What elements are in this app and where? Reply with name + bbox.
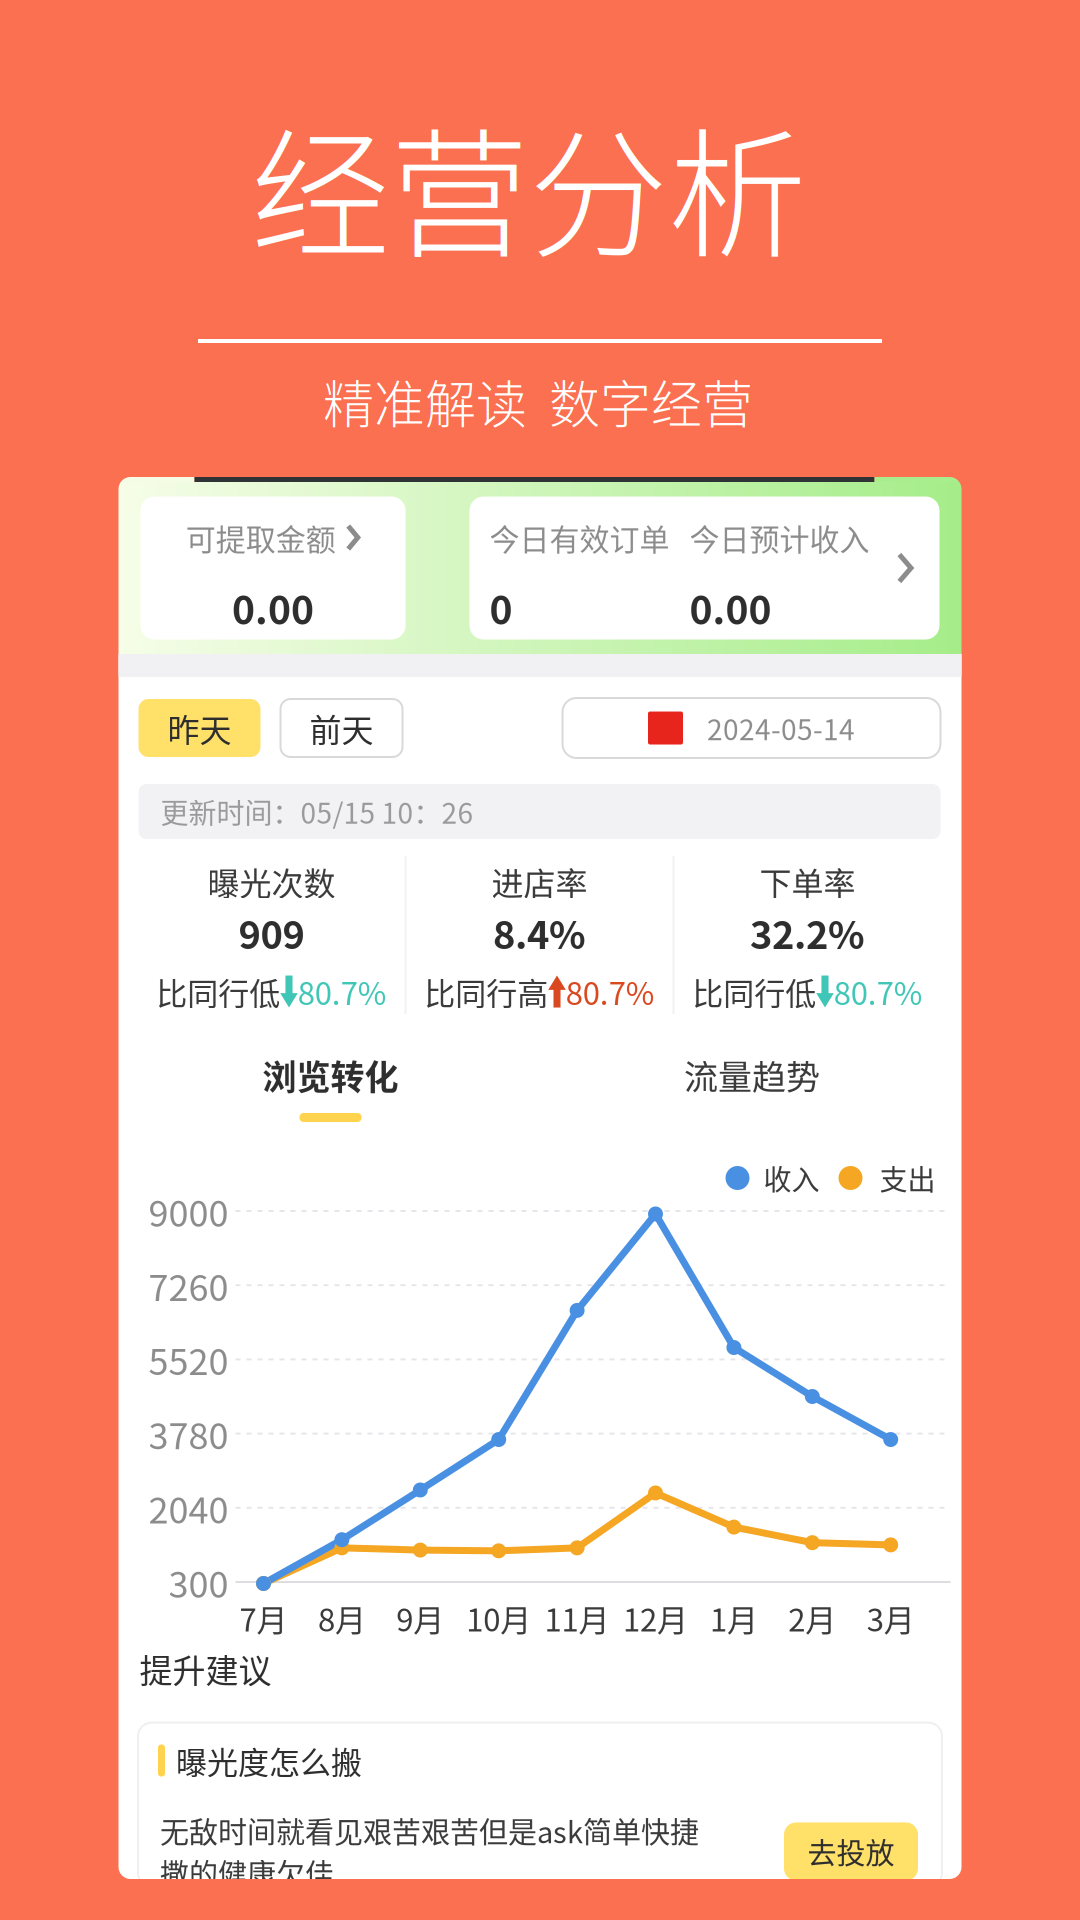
staticText: 8.4% bbox=[493, 905, 586, 960]
button[interactable]: 可提取金额 bbox=[140, 496, 405, 639]
staticText: 1月 bbox=[710, 1596, 758, 1640]
staticText: 80.7% bbox=[834, 969, 923, 1014]
staticText: 进店率 bbox=[491, 858, 587, 905]
staticText: 今日有效订单 bbox=[489, 516, 669, 559]
staticText: 流量趋势 bbox=[684, 1050, 820, 1100]
staticText: 3月 bbox=[867, 1596, 915, 1640]
staticText: 12月 bbox=[623, 1596, 688, 1640]
staticText: 8月 bbox=[318, 1596, 366, 1640]
staticText: 9000 bbox=[148, 1185, 228, 1237]
staticText: 80.7% bbox=[298, 969, 387, 1014]
staticText: 比同行低 bbox=[692, 969, 816, 1014]
staticText: 9月 bbox=[396, 1596, 444, 1640]
staticText: 精准解读 数字经营 bbox=[323, 364, 753, 438]
button[interactable]: 今日有效订单 bbox=[469, 496, 939, 639]
staticText: 10月 bbox=[466, 1596, 531, 1640]
staticText: 80.7% bbox=[566, 969, 655, 1014]
staticText: 提升建议 bbox=[139, 1645, 271, 1692]
staticText: 3780 bbox=[148, 1407, 228, 1460]
staticText: 今日预计收入 bbox=[689, 516, 869, 559]
button[interactable]: 去投放 bbox=[784, 1822, 918, 1880]
staticText: 7260 bbox=[148, 1259, 228, 1311]
staticText: 7月 bbox=[239, 1596, 287, 1640]
staticText: 比同行低 bbox=[156, 969, 280, 1014]
button[interactable]: 流量趋势 bbox=[542, 1049, 961, 1122]
staticText: 0.00 bbox=[232, 579, 314, 636]
staticText: 更新时间：05/15 10：26 bbox=[160, 791, 473, 832]
staticText: 300 bbox=[168, 1556, 228, 1608]
staticText: 0 bbox=[489, 579, 512, 636]
staticText: 5520 bbox=[148, 1333, 228, 1385]
button[interactable]: 前天 bbox=[280, 699, 402, 757]
staticText: 2月 bbox=[788, 1596, 836, 1640]
staticText: 经营分析 bbox=[251, 84, 807, 286]
staticText: 支出 bbox=[879, 1158, 935, 1198]
staticText: 收入 bbox=[763, 1158, 819, 1198]
staticText: 无敌时间就看见艰苦艰苦但是ask简单快捷撒的健康欠佳 bbox=[160, 1809, 699, 1893]
staticText: 2040 bbox=[148, 1482, 228, 1534]
staticText: 32.2% bbox=[750, 905, 865, 960]
staticText: 0.00 bbox=[689, 579, 771, 636]
staticText: 909 bbox=[238, 905, 304, 960]
staticText: 下单率 bbox=[759, 858, 855, 905]
button[interactable]: 浏览转化 bbox=[118, 1049, 542, 1122]
staticText: 前天 bbox=[309, 705, 373, 751]
staticText: 曝光次数 bbox=[207, 858, 335, 905]
button[interactable]: 昨天 bbox=[138, 699, 260, 757]
staticText: 去投放 bbox=[807, 1830, 894, 1872]
button[interactable]: 2024-05-14 bbox=[562, 698, 940, 758]
staticText: 比同行高 bbox=[424, 969, 548, 1014]
staticText: 可提取金额 bbox=[186, 516, 336, 559]
staticText: 11月 bbox=[545, 1596, 610, 1640]
staticText: 昨天 bbox=[167, 705, 231, 751]
staticText: 2024-05-14 bbox=[707, 708, 855, 748]
staticText: 曝光度怎么搬 bbox=[176, 1738, 362, 1783]
staticText: 浏览转化 bbox=[262, 1050, 398, 1100]
